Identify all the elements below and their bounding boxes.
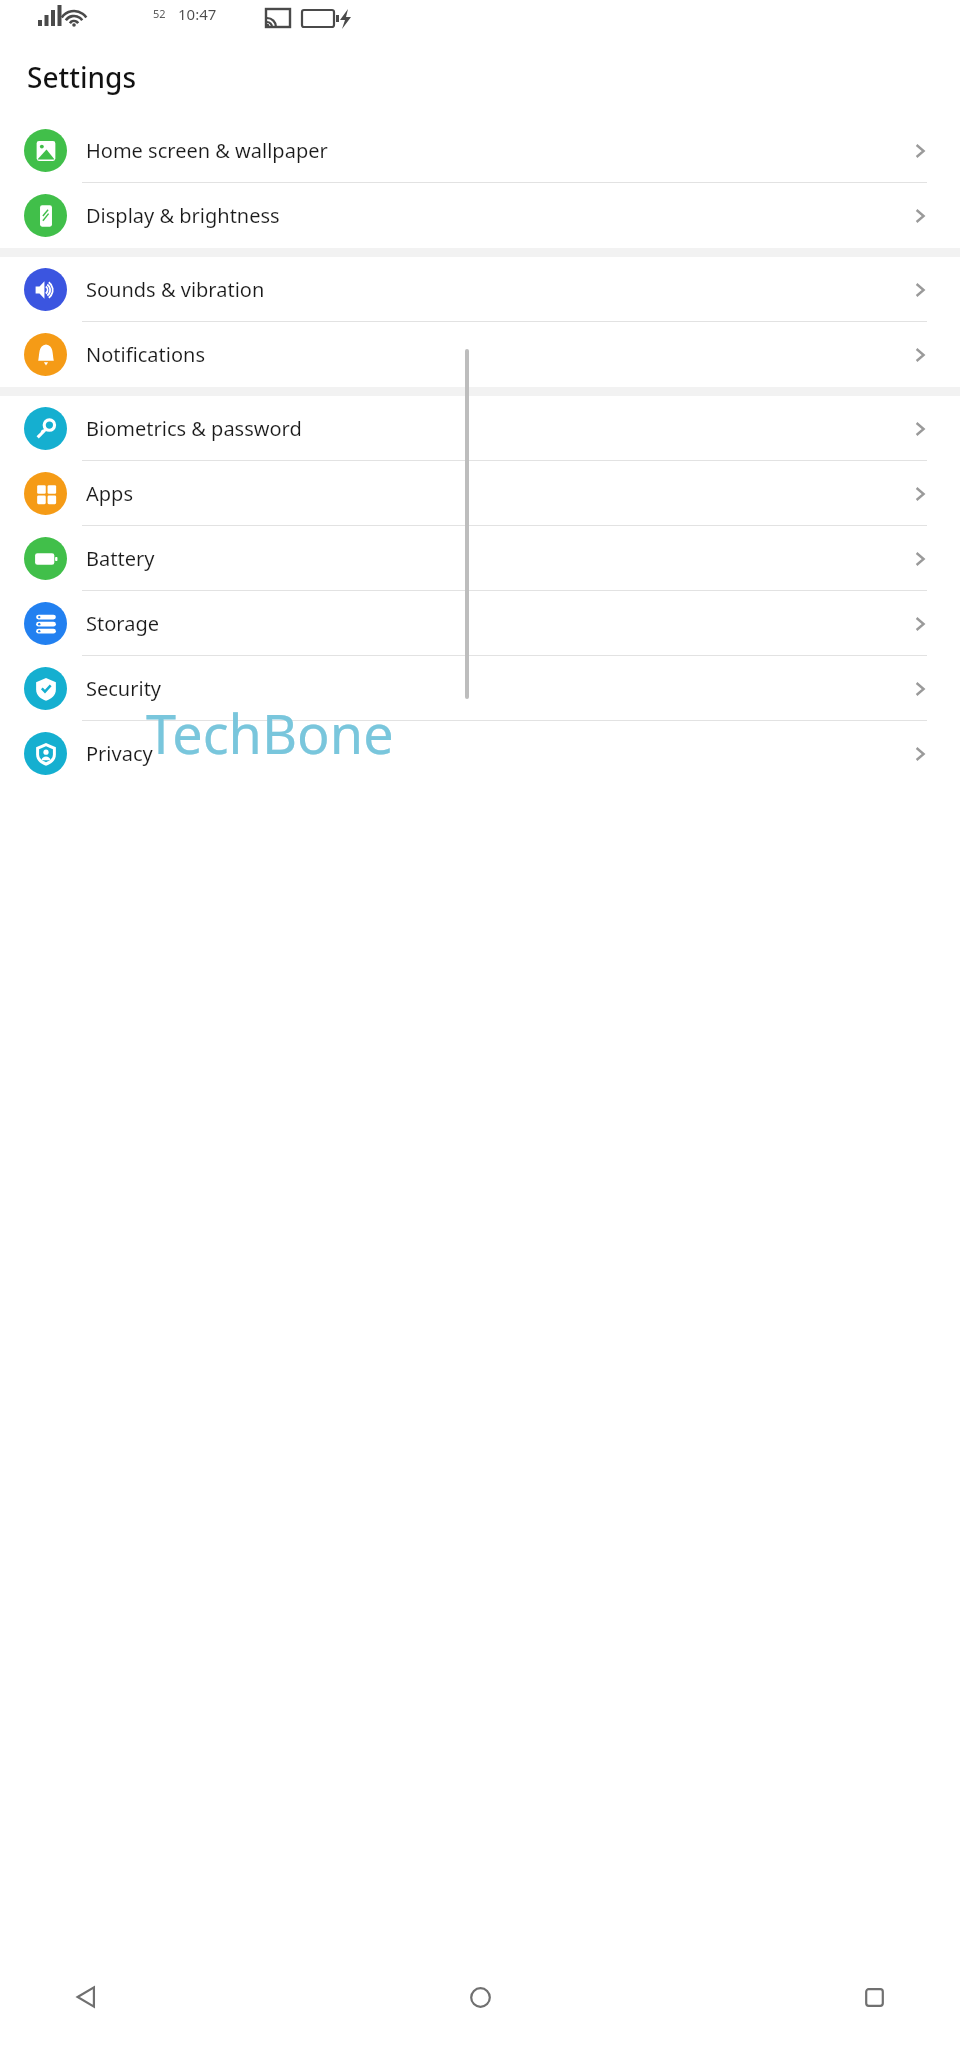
staticText: Home screen & wallpaper: [86, 137, 910, 164]
button[interactable]: Privacy: [0, 721, 960, 786]
staticText: Apps: [86, 480, 910, 507]
button[interactable]: Notifications: [0, 322, 960, 387]
button[interactable]: Back: [60, 1971, 112, 2023]
button[interactable]: Battery: [0, 526, 960, 591]
button[interactable]: Storage: [0, 591, 960, 656]
button[interactable]: Sounds & vibration: [0, 257, 960, 322]
staticText: 10:47: [178, 4, 217, 24]
button[interactable]: Recent apps: [848, 1971, 900, 2023]
button[interactable]: Home screen & wallpaper: [0, 118, 960, 183]
staticText: Security: [86, 675, 910, 702]
button[interactable]: Display & brightness: [0, 183, 960, 248]
staticText: Notifications: [86, 341, 910, 368]
staticText: Storage: [86, 610, 910, 637]
button[interactable]: Security: [0, 656, 960, 721]
staticText: Sounds & vibration: [86, 276, 910, 303]
staticText: 52: [153, 6, 166, 21]
staticText: TechBone: [146, 696, 394, 770]
staticText: Settings: [27, 58, 137, 96]
staticText: Biometrics & password: [86, 415, 910, 442]
staticText: Privacy: [86, 740, 910, 767]
staticText: Battery: [86, 545, 910, 572]
staticText: Display & brightness: [86, 202, 910, 229]
button[interactable]: Home: [454, 1971, 506, 2023]
button[interactable]: Apps: [0, 461, 960, 526]
button[interactable]: Biometrics & password: [0, 396, 960, 461]
